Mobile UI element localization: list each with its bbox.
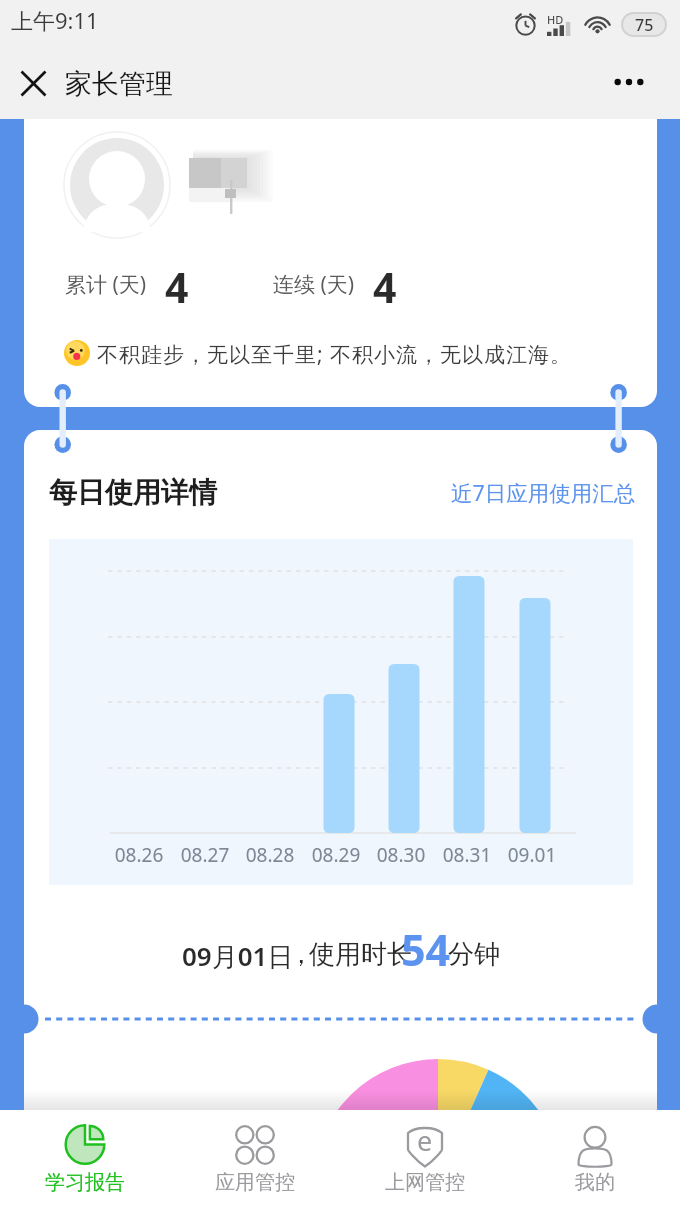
staticText: 08.26 xyxy=(113,842,165,868)
staticText: 09月01日 xyxy=(182,938,294,974)
staticText: 4 xyxy=(373,259,397,315)
staticText: ， xyxy=(288,938,314,971)
button[interactable]: 应用管控 xyxy=(170,1110,340,1209)
staticText: 应用管控 xyxy=(215,1170,295,1195)
staticText: 08.30 xyxy=(375,842,427,868)
staticText: 09.01 xyxy=(506,842,558,868)
staticText: 08.31 xyxy=(441,842,493,868)
staticText: 家长管理 xyxy=(65,67,173,101)
staticText: 近7日应用使用汇总 xyxy=(451,478,636,507)
button[interactable]: e xyxy=(340,1110,510,1209)
staticText: 08.29 xyxy=(310,842,362,868)
staticText: 54 xyxy=(401,920,451,979)
staticText: 上网管控 xyxy=(385,1170,465,1195)
staticText: 累计 (天) xyxy=(65,270,147,299)
staticText: e xyxy=(417,1122,433,1159)
button[interactable]: 近7日应用使用汇总 xyxy=(451,478,636,507)
staticText: HD xyxy=(547,12,564,27)
staticText: 上午9:11 xyxy=(11,5,99,35)
staticText: 4 xyxy=(165,259,189,315)
staticText: 使用时长 xyxy=(309,938,413,971)
staticText: 08.27 xyxy=(179,842,231,868)
staticText: 连续 (天) xyxy=(273,270,355,299)
staticText: 我的 xyxy=(575,1170,615,1195)
staticText: 学习报告 xyxy=(45,1170,125,1195)
staticText: 分钟 xyxy=(448,938,500,971)
button[interactable]: 学习报告 xyxy=(0,1110,170,1209)
button[interactable]: Close xyxy=(8,58,59,109)
staticText: 每日使用详情 xyxy=(49,475,217,510)
button[interactable]: More options xyxy=(609,62,649,102)
button[interactable]: 我的 xyxy=(510,1110,680,1209)
staticText: 75 xyxy=(635,14,654,35)
staticText: 08.28 xyxy=(244,842,296,868)
staticText: 不积跬步，无以至千里; 不积小流，无以成江海。 xyxy=(97,340,573,369)
